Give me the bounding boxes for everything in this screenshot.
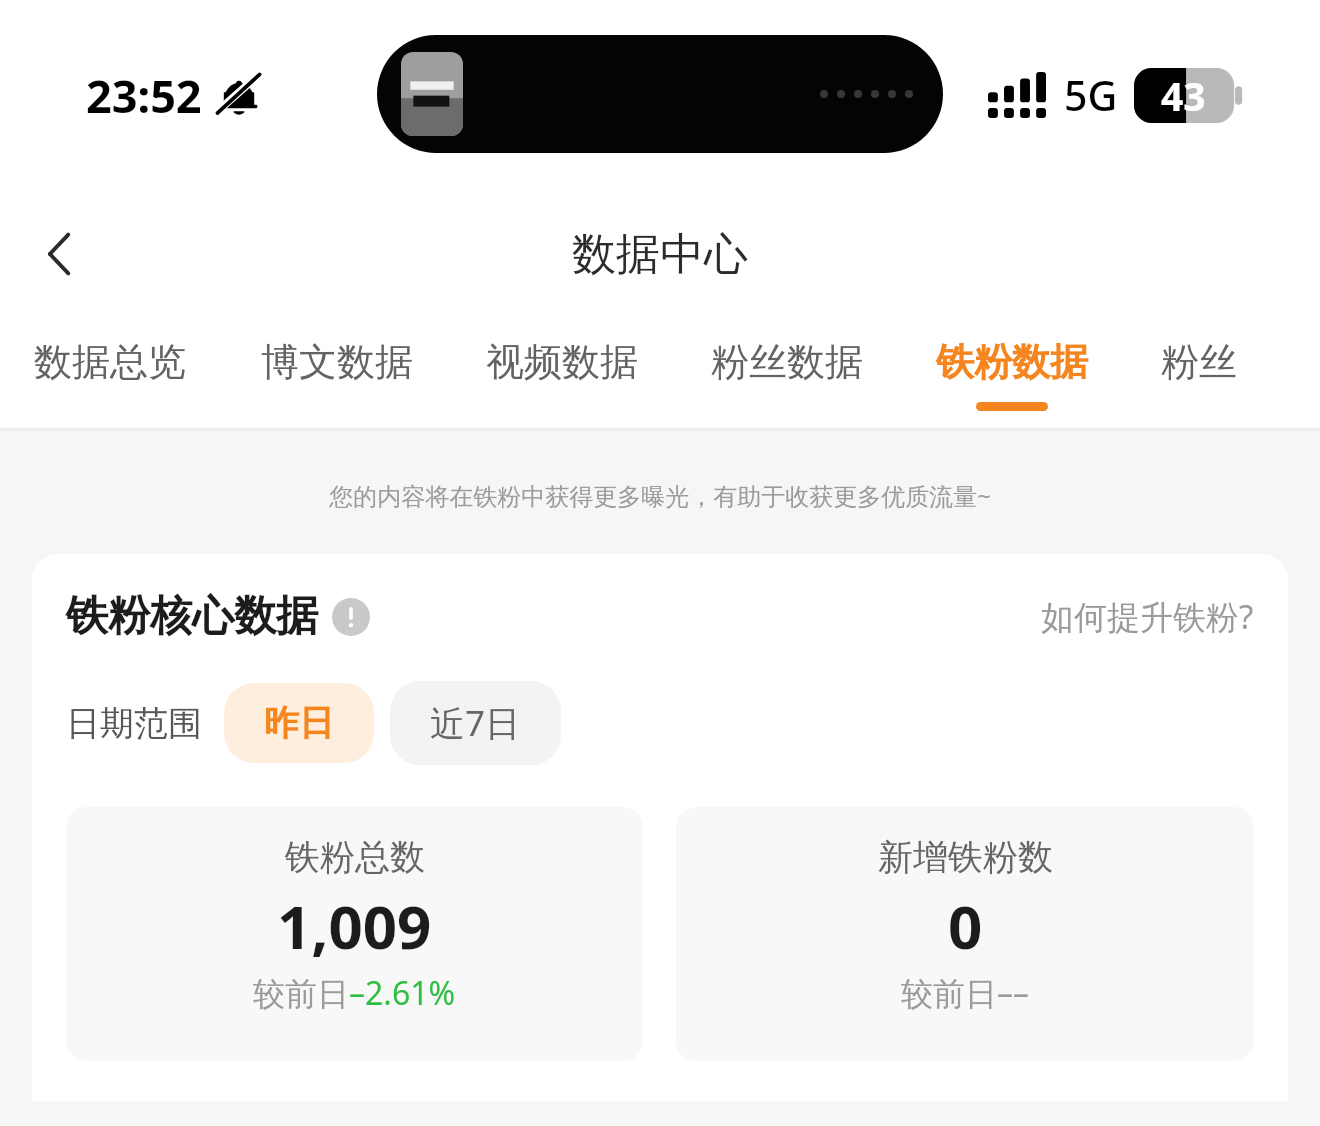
- staticText: 粉丝: [1161, 338, 1237, 386]
- staticText: 近7日: [430, 699, 521, 747]
- button[interactable]: 博文数据: [261, 318, 413, 411]
- button[interactable]: 铁粉总数: [66, 807, 643, 1061]
- button[interactable]: Back: [20, 214, 100, 294]
- button[interactable]: 近7日: [390, 681, 561, 765]
- staticText: 43: [1161, 69, 1206, 122]
- staticText: 昨日: [264, 701, 334, 745]
- staticText: 铁粉核心数据: [66, 590, 318, 643]
- staticText: 您的内容将在铁粉中获得更多曝光，有助于收获更多优质流量~: [24, 479, 1296, 512]
- staticText: 数据中心: [572, 227, 748, 282]
- staticText: 新增铁粉数: [878, 835, 1053, 879]
- staticText: 粉丝数据: [711, 338, 863, 386]
- staticText: 博文数据: [261, 338, 413, 386]
- button[interactable]: Info: [330, 596, 372, 638]
- button[interactable]: 铁粉数据: [936, 318, 1088, 411]
- button[interactable]: 昨日: [224, 683, 374, 763]
- staticText: 23:52: [86, 65, 202, 126]
- button[interactable]: 如何提升铁粉?: [1041, 594, 1254, 639]
- staticText: 0: [948, 885, 983, 967]
- staticText: 较前日––: [901, 971, 1030, 1015]
- staticText: 日期范围: [66, 702, 202, 745]
- staticText: 视频数据: [486, 338, 638, 386]
- other: Notifications muted: [216, 73, 262, 119]
- button[interactable]: 粉丝: [1161, 318, 1237, 411]
- staticText: 铁粉数据: [936, 338, 1088, 386]
- button[interactable]: 粉丝数据: [711, 318, 863, 411]
- staticText: 数据总览: [34, 338, 186, 386]
- staticText: 铁粉总数: [285, 835, 425, 879]
- staticText: 5G: [1064, 67, 1118, 123]
- button[interactable]: 新增铁粉数: [676, 807, 1254, 1061]
- staticText: 如何提升铁粉?: [1041, 594, 1254, 639]
- staticText: 较前日–2.61%: [253, 971, 456, 1015]
- staticText: 1,009: [277, 885, 432, 967]
- button[interactable]: 视频数据: [486, 318, 638, 411]
- button[interactable]: 数据总览: [34, 318, 186, 411]
